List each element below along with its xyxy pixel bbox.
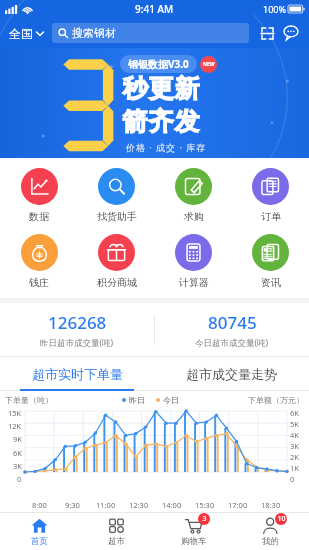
staticText: NEW [203,61,215,68]
staticText: 全国 [9,26,33,41]
staticText: 今日 [163,395,179,405]
button[interactable]: Messages [280,22,302,44]
staticText: 下单量（吨） [5,395,53,405]
button[interactable]: 订单 [232,166,309,225]
button[interactable]: 全国 [7,22,46,45]
staticText: 3K [13,461,22,471]
staticText: 0 [17,474,22,484]
staticText: 9:41 AM [135,2,174,16]
staticText: 价格 · 成交 · 库存 [126,141,207,153]
staticText: 昨日 [129,395,145,405]
staticText: 15K [8,408,22,418]
staticText: 积分商城 [97,276,137,289]
staticText: 求购 [184,210,204,223]
staticText: 10 [277,514,286,524]
staticText: 下单额（万元） [248,395,304,405]
button[interactable]: 超市实时下单量 [0,357,154,391]
staticText: 17:00 [228,500,248,510]
staticText: 0 [290,474,295,484]
button[interactable]: 10 [232,513,309,550]
staticText: 12:30 [129,500,149,510]
staticText: 计算器 [179,276,209,289]
staticText: 80745 [208,311,257,334]
staticText: 3K [290,441,299,451]
staticText: 我的 [262,536,279,547]
staticText: 1K [290,463,299,473]
button[interactable]: 资讯 [232,232,309,291]
staticText: 数据 [29,210,49,223]
staticText: 9:30 [65,500,80,510]
staticText: 126268 [48,311,107,334]
staticText: 超市成交量走势 [186,366,277,382]
button[interactable]: 搜索钢材 [52,23,249,43]
button[interactable]: 钱庄 [0,232,78,291]
button[interactable]: 超市成交量走势 [154,357,309,391]
button[interactable]: 找货助手 [78,166,155,225]
staticText: 12K [8,421,22,431]
staticText: 钱庄 [29,276,49,289]
staticText: 箭齐发 [122,106,200,137]
button[interactable]: 126268 [0,310,154,350]
staticText: 首页 [31,536,48,547]
staticText: 购物车 [181,536,207,547]
button[interactable]: 数据 [0,166,78,225]
button[interactable]: 3 [155,513,232,550]
staticText: 5K [290,419,299,429]
staticText: 3 [202,514,207,524]
staticText: 超市 [108,536,125,547]
button[interactable]: 求购 [155,166,232,225]
staticText: 钢银数据V3.0 [128,57,189,71]
staticText: 订单 [261,210,281,223]
staticText: 找货助手 [97,210,137,223]
staticText: 今日超市成交量(吨) [195,337,269,349]
staticText: 15:30 [195,500,215,510]
staticText: 4K [290,430,299,440]
staticText: 秒更新 [122,73,200,104]
button[interactable]: 超市 [78,513,155,550]
staticText: 超市实时下单量 [32,366,123,382]
staticText: 9K [13,434,22,444]
button[interactable]: 积分商城 [78,232,155,291]
button[interactable]: 计算器 [155,232,232,291]
staticText: 6K [13,448,22,458]
staticText: 昨日超市成交量(吨) [40,337,114,349]
staticText: 6K [290,408,299,418]
button[interactable]: Scan [256,22,278,44]
staticText: 8:00 [32,500,47,510]
staticText: 100% [263,3,286,15]
staticText: 18:30 [261,500,281,510]
button[interactable]: 80745 [155,310,309,350]
staticText: 11:00 [96,500,116,510]
staticText: 14:00 [162,500,182,510]
staticText: 搜索钢材 [72,26,116,40]
button[interactable]: 首页 [0,513,78,550]
staticText: 资讯 [261,276,281,289]
staticText: 2K [290,452,299,462]
